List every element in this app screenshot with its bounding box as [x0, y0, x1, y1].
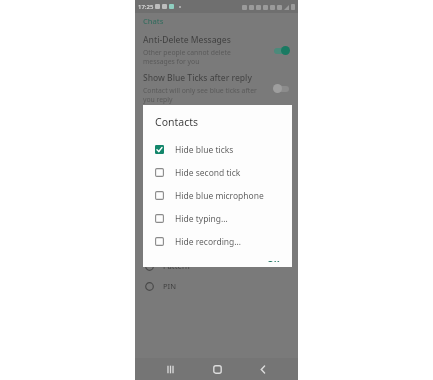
staticText: Hide recording… [175, 236, 242, 248]
button[interactable]: Show Blue Ticks after reply [135, 72, 298, 104]
button[interactable]: Hide blue microphone [143, 184, 292, 207]
staticText: PIN [163, 281, 177, 291]
button[interactable]: OK [255, 253, 292, 267]
button[interactable]: Fingerprint [135, 241, 298, 251]
button[interactable]: Hide blue ticks [143, 138, 292, 161]
button[interactable]: Home [205, 358, 229, 380]
button[interactable]: Hide typing… [143, 207, 292, 230]
staticText: Contacts [155, 115, 199, 129]
staticText: OK [267, 258, 280, 262]
button[interactable]: Hide second tick [143, 161, 292, 184]
button[interactable]: Anti-Delete Messages [135, 34, 298, 66]
staticText: Fingerprint [163, 241, 204, 251]
staticText: Show Blue Ticks after reply [143, 72, 252, 84]
staticText: 17:25 [138, 3, 154, 11]
staticText: Hide blue ticks [175, 144, 234, 156]
staticText: Hide blue microphone [175, 190, 264, 202]
staticText: Contact will only see blue ticks after y… [143, 86, 257, 104]
button[interactable]: Toggle off [273, 84, 290, 93]
button[interactable]: Back [251, 358, 275, 380]
staticText: Hide typing… [175, 213, 228, 225]
staticText: Hide second tick [175, 167, 241, 179]
staticText: Chats [143, 16, 164, 26]
staticText: Pattern [163, 261, 190, 271]
button[interactable]: PIN [135, 281, 298, 291]
button[interactable]: Pattern [135, 261, 298, 271]
button[interactable]: Recents [158, 358, 182, 380]
button[interactable]: Hide recording… [143, 230, 292, 253]
staticText: Other people cannot delete messages for … [143, 48, 231, 66]
staticText: WhatsApp Lock [143, 220, 273, 232]
button[interactable]: WhatsApp Lock [135, 220, 298, 232]
staticText: Anti-Delete Messages [143, 34, 231, 46]
button[interactable]: Toggle on [273, 46, 290, 55]
